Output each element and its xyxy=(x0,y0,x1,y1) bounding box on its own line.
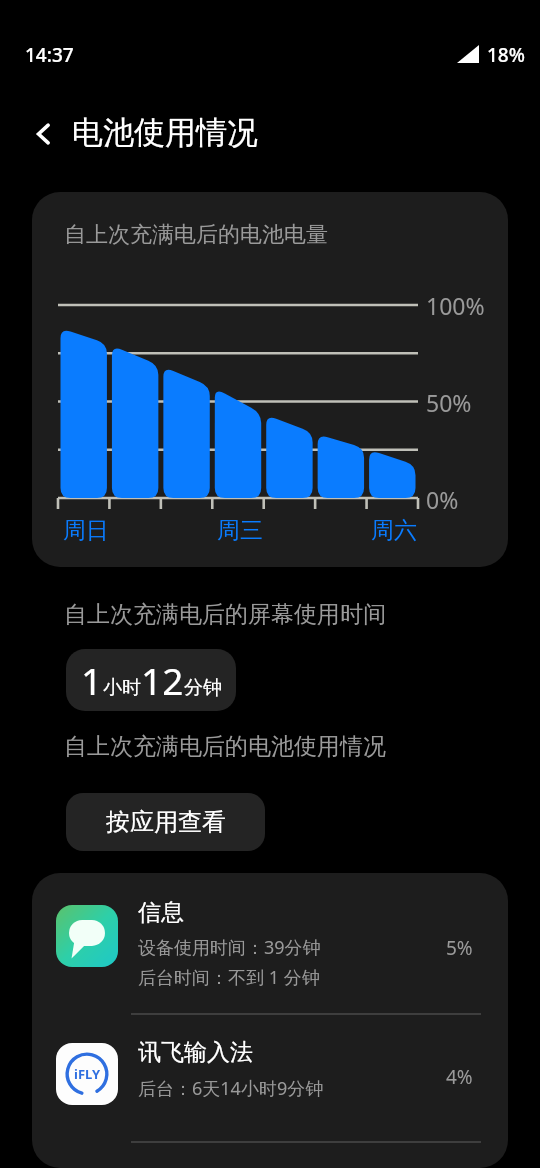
button[interactable]: 信息 xyxy=(32,873,508,1014)
staticText: 周六 xyxy=(371,516,417,545)
button[interactable]: iFLY xyxy=(32,1016,508,1136)
staticText: 周日 xyxy=(63,516,109,545)
staticText: 小时 xyxy=(103,676,141,700)
staticText: 50% xyxy=(426,387,472,418)
staticText: 14:37 xyxy=(25,42,74,68)
staticText: 1 xyxy=(81,655,103,705)
staticText: 4% xyxy=(446,1064,473,1090)
staticText: 5% xyxy=(446,935,473,961)
staticText: 电池使用情况 xyxy=(72,113,258,152)
staticText: 设备使用时间：39分钟 xyxy=(138,935,321,960)
staticText: 18% xyxy=(487,42,525,68)
staticText: 分钟 xyxy=(184,676,222,700)
staticText: iFLY xyxy=(74,1065,101,1083)
staticText: 自上次充满电后的电池电量 xyxy=(64,221,328,249)
button[interactable]: Back xyxy=(20,110,68,158)
button[interactable]: 1 xyxy=(66,649,236,711)
staticText: 自上次充满电后的屏幕使用时间 xyxy=(64,600,386,629)
staticText: 周三 xyxy=(217,516,263,545)
staticText: 信息 xyxy=(138,898,184,927)
button[interactable]: 按应用查看 xyxy=(66,793,265,851)
staticText: 12 xyxy=(141,655,184,705)
staticText: 100% xyxy=(426,290,485,321)
staticText: 后台：6天14小时9分钟 xyxy=(138,1076,324,1101)
staticText: 讯飞输入法 xyxy=(138,1038,253,1067)
staticText: 0% xyxy=(426,484,459,515)
staticText: 后台时间：不到 1 分钟 xyxy=(138,965,320,990)
staticText: 自上次充满电后的电池使用情况 xyxy=(64,732,386,761)
staticText: 按应用查看 xyxy=(106,807,226,837)
